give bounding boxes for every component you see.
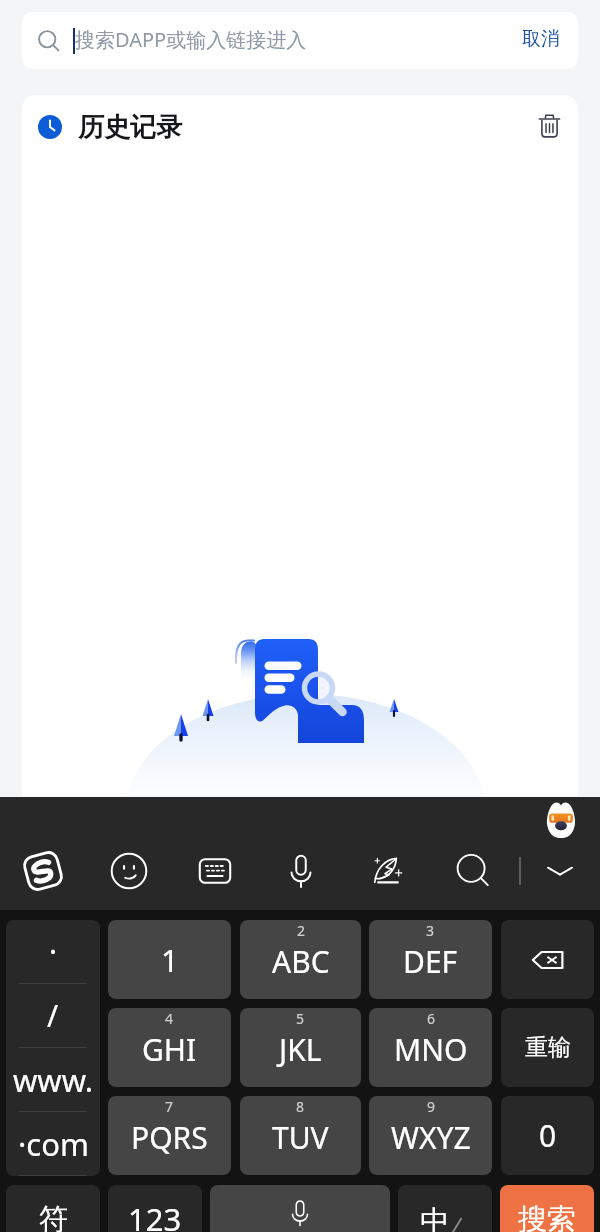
staticText: 9: [427, 1097, 436, 1116]
staticText: 符: [39, 1201, 68, 1232]
staticText: WXYZ: [391, 1117, 471, 1158]
staticText: ·com: [18, 1123, 89, 1165]
button[interactable]: /: [6, 984, 100, 1047]
staticText: 4: [165, 1009, 174, 1028]
button[interactable]: 5: [240, 1008, 361, 1087]
staticText: 123: [128, 1198, 182, 1232]
staticText: 0: [539, 1115, 557, 1156]
button[interactable]: ·com: [6, 1112, 100, 1175]
button[interactable]: 收起键盘: [536, 847, 584, 895]
staticText: MNO: [394, 1029, 468, 1070]
staticText: 6: [427, 1009, 436, 1028]
button[interactable]: ·: [6, 920, 100, 983]
button[interactable]: 6: [369, 1008, 492, 1087]
staticText: 搜索: [518, 1201, 576, 1232]
staticText: 5: [296, 1009, 305, 1028]
staticText: PQRS: [131, 1117, 208, 1158]
button[interactable]: 3: [369, 920, 492, 999]
button[interactable]: 键盘设置: [191, 847, 239, 895]
button[interactable]: 历史记录: [36, 105, 216, 149]
button[interactable]: 符: [6, 1185, 100, 1232]
button[interactable]: www.: [6, 1048, 100, 1111]
button[interactable]: 搜索: [500, 1185, 594, 1232]
button[interactable]: 取消: [512, 22, 570, 56]
button[interactable]: 4: [108, 1008, 231, 1087]
button[interactable]: 123: [108, 1185, 202, 1232]
button[interactable]: 清除历史记录: [529, 105, 569, 145]
button[interactable]: 手写输入: [364, 847, 412, 895]
button[interactable]: 重输: [501, 1008, 594, 1087]
staticText: 8: [296, 1097, 305, 1116]
staticText: 搜索DAPP或输入链接进入: [75, 26, 307, 53]
staticText: ABC: [272, 941, 330, 982]
staticText: 1: [161, 939, 179, 981]
button[interactable]: 9: [369, 1096, 492, 1175]
button[interactable]: 输入法助手: [545, 801, 577, 838]
staticText: 重输: [525, 1033, 571, 1062]
staticText: www.: [13, 1059, 94, 1101]
staticText: GHI: [142, 1029, 197, 1070]
staticText: ·: [49, 931, 58, 972]
button[interactable]: 2: [240, 920, 361, 999]
button[interactable]: 语音输入: [210, 1185, 390, 1232]
button[interactable]: 中: [398, 1185, 492, 1232]
button[interactable]: 搜索: [449, 847, 497, 895]
button[interactable]: 表情: [105, 847, 153, 895]
staticText: TUV: [272, 1117, 329, 1158]
staticText: 历史记录: [78, 111, 182, 144]
button[interactable]: 语音输入: [277, 847, 325, 895]
button[interactable]: 搜索DAPP或输入链接进入: [22, 12, 578, 69]
button[interactable]: 0: [501, 1096, 594, 1175]
button[interactable]: 1: [108, 920, 231, 999]
staticText: 中: [420, 1203, 449, 1232]
button[interactable]: 删除: [501, 920, 594, 999]
staticText: DEF: [403, 941, 458, 982]
staticText: 取消: [522, 27, 560, 51]
button[interactable]: 搜狗输入法: [19, 847, 67, 895]
staticText: /: [47, 995, 59, 1036]
button[interactable]: 7: [108, 1096, 231, 1175]
staticText: 7: [165, 1097, 174, 1116]
staticText: 2: [297, 921, 306, 940]
staticText: JKL: [279, 1029, 322, 1070]
button[interactable]: 8: [240, 1096, 361, 1175]
staticText: 3: [426, 921, 435, 940]
